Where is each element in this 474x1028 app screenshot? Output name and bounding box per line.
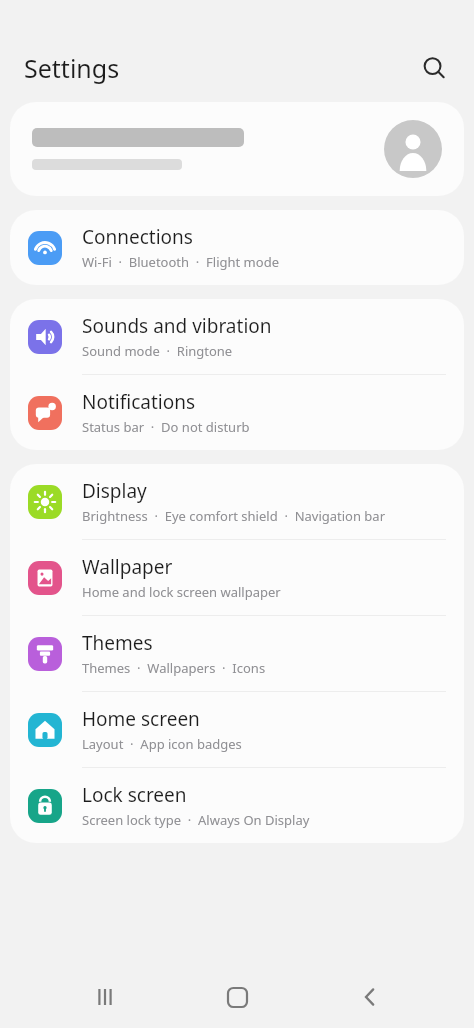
staticText: Connections [82, 224, 193, 250]
button[interactable]: Notifications [10, 375, 464, 450]
staticText: Home screen [82, 706, 200, 732]
staticText: Themes · Wallpapers · Icons [82, 659, 266, 677]
staticText: Home and lock screen wallpaper [82, 583, 281, 601]
staticText: Layout · App icon badges [82, 735, 242, 753]
staticText: Lock screen [82, 782, 187, 808]
button[interactable]: Themes [10, 616, 464, 691]
staticText: Sound mode · Ringtone [82, 342, 233, 360]
staticText: Brightness · Eye comfort shield · Naviga… [82, 507, 386, 525]
button[interactable]: Home screen [10, 692, 464, 767]
staticText: Settings [24, 51, 120, 85]
button[interactable] [10, 102, 464, 196]
button[interactable]: Connections [10, 210, 464, 285]
button[interactable]: Sounds and vibration [10, 299, 464, 374]
button[interactable]: Back [342, 969, 398, 1025]
button[interactable]: Search [414, 48, 454, 88]
button[interactable]: Display [10, 464, 464, 539]
staticText: Notifications [82, 389, 196, 415]
button[interactable]: Home [209, 969, 265, 1025]
button[interactable]: Wallpaper [10, 540, 464, 615]
button[interactable]: Lock screen [10, 768, 464, 843]
staticText: Wi-Fi · Bluetooth · Flight mode [82, 253, 279, 271]
button[interactable]: Recents [77, 969, 133, 1025]
staticText: Display [82, 478, 147, 504]
staticText: Status bar · Do not disturb [82, 418, 250, 436]
staticText: Themes [82, 630, 153, 656]
staticText: Sounds and vibration [82, 313, 272, 339]
staticText: Screen lock type · Always On Display [82, 811, 310, 829]
staticText: Wallpaper [82, 554, 173, 580]
